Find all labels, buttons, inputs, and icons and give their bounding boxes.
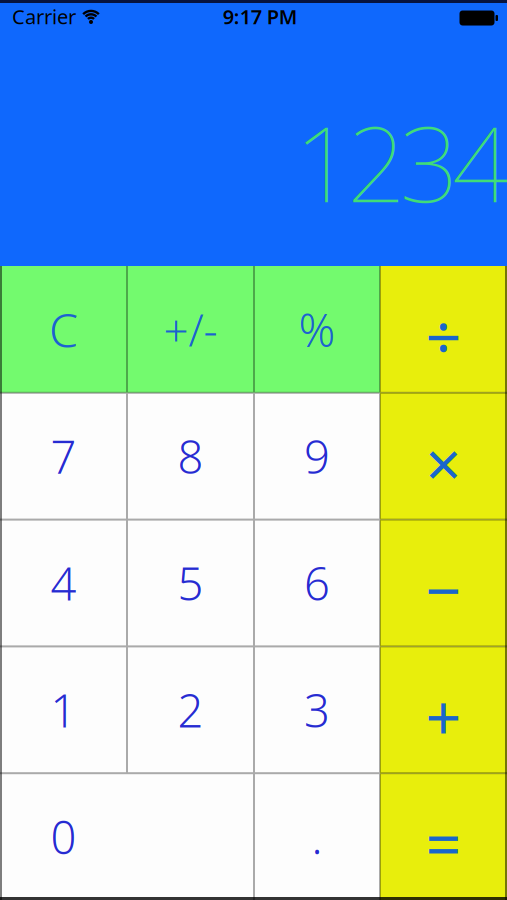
staticText: 6 (304, 553, 330, 613)
button[interactable]: − (380, 520, 507, 646)
button[interactable]: . (254, 773, 380, 900)
button[interactable]: +/- (127, 266, 254, 393)
button[interactable]: 4 (0, 520, 127, 646)
staticText: 0 (50, 806, 76, 867)
button[interactable]: + (380, 646, 507, 773)
button[interactable]: 9 (254, 393, 380, 520)
button[interactable]: C (0, 266, 127, 393)
staticText: Carrier (12, 3, 76, 30)
staticText: ÷ (425, 294, 461, 377)
button[interactable]: 0 (0, 773, 254, 900)
button[interactable]: 5 (127, 520, 254, 646)
staticText: 2 (177, 680, 203, 740)
button[interactable]: 3 (254, 646, 380, 773)
staticText: . (311, 806, 322, 867)
button[interactable]: 2 (127, 646, 254, 773)
staticText: + (425, 675, 461, 758)
staticText: 7 (50, 426, 76, 486)
staticText: 9:17 PM (223, 3, 298, 30)
staticText: 3 (304, 680, 330, 740)
staticText: 4 (50, 553, 76, 613)
button[interactable]: 7 (0, 393, 127, 520)
button[interactable]: ÷ (380, 266, 507, 393)
button[interactable]: 1 (0, 646, 127, 773)
staticText: 1 (50, 680, 76, 740)
staticText: 1234 (294, 93, 507, 231)
staticText: C (49, 298, 78, 360)
staticText: − (425, 548, 461, 631)
button[interactable]: 6 (254, 520, 380, 646)
button[interactable]: % (254, 266, 380, 393)
staticText: +/- (163, 300, 217, 359)
staticText: = (425, 801, 461, 885)
staticText: 8 (177, 426, 203, 486)
staticText: 9 (304, 426, 330, 486)
staticText: 5 (177, 553, 203, 613)
button[interactable]: = (380, 773, 507, 900)
button[interactable]: 8 (127, 393, 254, 520)
button[interactable]: × (380, 393, 507, 520)
staticText: × (425, 421, 461, 504)
staticText: % (298, 299, 335, 359)
